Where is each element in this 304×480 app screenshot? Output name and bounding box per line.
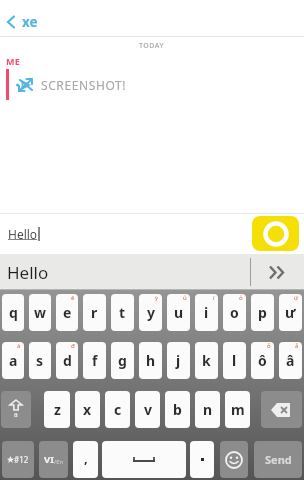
staticText: ỏ bbox=[239, 294, 243, 302]
button[interactable]: a bbox=[1, 391, 31, 428]
staticText: y bbox=[147, 303, 155, 322]
button[interactable]: , bbox=[73, 441, 98, 478]
button[interactable] bbox=[102, 441, 186, 478]
staticText: ứ bbox=[294, 294, 299, 302]
staticText: Send bbox=[265, 452, 292, 467]
staticText: t bbox=[119, 303, 126, 322]
staticText: ẫ bbox=[295, 342, 299, 350]
button[interactable]: r bbox=[83, 294, 106, 331]
staticText: ê bbox=[71, 294, 75, 302]
button[interactable]: k bbox=[195, 342, 218, 379]
staticText: Hello bbox=[8, 226, 38, 242]
staticText: a bbox=[9, 351, 18, 370]
button[interactable]: f bbox=[83, 342, 106, 379]
staticText: ME bbox=[6, 55, 21, 67]
staticText: p bbox=[258, 303, 267, 322]
button[interactable]: Send bbox=[254, 441, 302, 478]
button[interactable]: v bbox=[135, 391, 160, 428]
staticText: f bbox=[92, 351, 98, 370]
staticText: TODAY bbox=[139, 41, 165, 51]
staticText: ỗ bbox=[267, 342, 271, 350]
button[interactable]: t bbox=[111, 294, 134, 331]
staticText: r bbox=[91, 303, 98, 322]
button[interactable]: e bbox=[56, 294, 78, 331]
button[interactable]: VI bbox=[39, 441, 68, 478]
staticText: ô bbox=[258, 351, 267, 370]
button[interactable] bbox=[261, 391, 302, 428]
staticText: /En bbox=[54, 458, 64, 466]
staticText: w bbox=[34, 303, 46, 322]
staticText: l bbox=[232, 351, 237, 370]
staticText: #12 bbox=[14, 454, 29, 465]
staticText: s bbox=[36, 351, 44, 370]
button[interactable]: p bbox=[251, 294, 274, 331]
staticText: â bbox=[286, 351, 295, 370]
button[interactable] bbox=[252, 216, 299, 251]
staticText: b bbox=[173, 400, 182, 419]
staticText: n bbox=[203, 400, 213, 419]
staticText: a bbox=[14, 410, 18, 419]
button[interactable]: w bbox=[29, 294, 51, 331]
staticText: u bbox=[174, 303, 184, 322]
staticText: SCREENSHOT! bbox=[41, 77, 127, 93]
button[interactable]: z bbox=[44, 391, 70, 428]
button[interactable]: n bbox=[195, 391, 220, 428]
staticText: ỳ bbox=[155, 294, 159, 302]
staticText: h bbox=[146, 351, 156, 370]
staticText: ủ bbox=[183, 294, 187, 302]
button[interactable]: g bbox=[111, 342, 134, 379]
staticText: xe bbox=[22, 13, 38, 31]
button[interactable]: c bbox=[105, 391, 130, 428]
button[interactable]: a bbox=[2, 342, 24, 379]
staticText: z bbox=[54, 400, 61, 419]
staticText: i bbox=[204, 303, 209, 322]
button[interactable]: d bbox=[56, 342, 78, 379]
staticText: d bbox=[63, 351, 72, 370]
staticText: í bbox=[213, 294, 215, 302]
button[interactable]: j bbox=[167, 342, 190, 379]
button[interactable]: m bbox=[225, 391, 250, 428]
button[interactable] bbox=[190, 441, 214, 478]
staticText: Hello bbox=[7, 261, 49, 284]
button[interactable]: SCREENSHOT! bbox=[6, 69, 127, 100]
staticText: k bbox=[202, 351, 211, 370]
staticText: e bbox=[63, 303, 72, 322]
button[interactable]: s bbox=[29, 342, 51, 379]
staticText: o bbox=[230, 303, 239, 322]
staticText: , bbox=[84, 449, 88, 467]
button[interactable]: xe bbox=[7, 13, 38, 31]
button[interactable]: â bbox=[279, 342, 302, 379]
staticText: m bbox=[231, 400, 245, 419]
staticText: g bbox=[118, 351, 127, 370]
button[interactable]: h bbox=[139, 342, 162, 379]
button[interactable]: ô bbox=[251, 342, 274, 379]
staticText: q bbox=[9, 303, 18, 322]
button[interactable]: u bbox=[167, 294, 190, 331]
staticText: c bbox=[114, 400, 122, 419]
button[interactable]: y bbox=[139, 294, 162, 331]
button[interactable] bbox=[220, 441, 248, 478]
button[interactable]: q bbox=[2, 294, 24, 331]
staticText: v bbox=[144, 400, 152, 419]
button[interactable]: ư bbox=[279, 294, 302, 331]
button[interactable]: l bbox=[223, 342, 246, 379]
button[interactable]: x bbox=[75, 391, 100, 428]
staticText: j bbox=[176, 351, 181, 370]
button[interactable] bbox=[250, 254, 304, 290]
staticText: x bbox=[83, 400, 92, 419]
button[interactable]: i bbox=[195, 294, 218, 331]
staticText: ư bbox=[285, 303, 296, 322]
staticText: đ bbox=[71, 342, 75, 350]
button[interactable]: #12 bbox=[2, 441, 34, 478]
button[interactable]: o bbox=[223, 294, 246, 331]
staticText: VI bbox=[44, 453, 54, 466]
staticText: à bbox=[17, 342, 21, 350]
button[interactable]: b bbox=[165, 391, 190, 428]
